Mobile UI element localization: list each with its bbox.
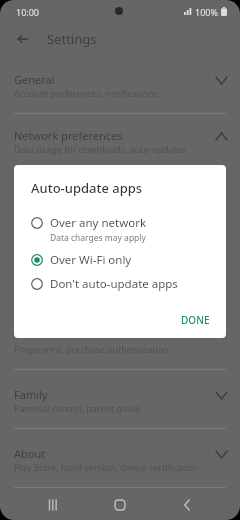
button[interactable]: Recent apps <box>40 492 66 518</box>
button[interactable]: Over any network <box>14 211 226 248</box>
staticText: Settings <box>47 30 97 48</box>
staticText: Account preferences, notifications <box>14 87 158 99</box>
staticText: Don't auto-update apps <box>50 276 178 292</box>
button[interactable]: Over Wi-Fi only <box>14 248 226 272</box>
button[interactable]: About <box>0 442 240 482</box>
button[interactable]: Network preferences <box>0 124 240 164</box>
staticText: 100% <box>195 6 218 18</box>
button[interactable]: Home <box>107 492 133 518</box>
staticText: Parental control, parent guide <box>14 402 141 414</box>
staticText: 10:00 <box>16 6 40 18</box>
button[interactable]: Family <box>0 383 240 423</box>
button[interactable]: General <box>0 68 240 108</box>
staticText: Data charges may apply <box>50 232 146 244</box>
staticText: Over Wi-Fi only <box>50 252 132 268</box>
button[interactable]: Back <box>10 26 36 52</box>
staticText: DONE <box>181 313 210 327</box>
staticText: Auto-update apps <box>31 179 143 197</box>
staticText: Network preferences <box>14 128 123 143</box>
button[interactable]: DONE <box>171 307 220 333</box>
staticText: Over any network <box>50 215 147 231</box>
staticText: Play Store, build version, device certif… <box>14 461 200 473</box>
button[interactable]: Back <box>174 492 200 518</box>
staticText: Family <box>14 387 48 402</box>
staticText: Data usage for downloads, auto-updates <box>14 143 187 155</box>
staticText: Fingerprint, purchase authentication <box>14 343 169 355</box>
staticText: About <box>14 446 46 461</box>
button[interactable]: Don't auto-update apps <box>14 272 226 296</box>
staticText: General <box>14 72 55 87</box>
